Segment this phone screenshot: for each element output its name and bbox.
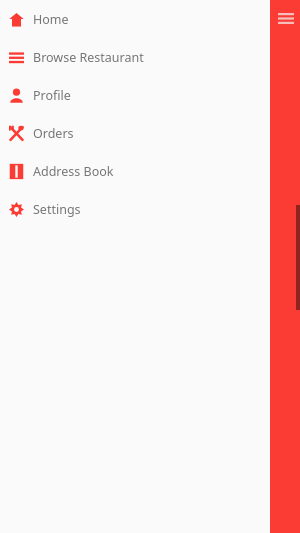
button[interactable]: Settings bbox=[0, 190, 270, 228]
button[interactable]: Profile bbox=[0, 76, 270, 114]
button[interactable]: Open navigation menu bbox=[276, 8, 296, 28]
staticText: Profile bbox=[33, 87, 71, 104]
staticText: Address Book bbox=[33, 163, 114, 180]
staticText: Orders bbox=[33, 125, 74, 142]
staticText: Settings bbox=[33, 201, 81, 218]
staticText: Home bbox=[33, 11, 69, 28]
button[interactable]: Home bbox=[0, 0, 270, 38]
button[interactable]: Address Book bbox=[0, 152, 270, 190]
staticText: Browse Restaurant bbox=[33, 49, 144, 66]
button[interactable]: Browse Restaurant bbox=[0, 38, 270, 76]
button[interactable]: Orders bbox=[0, 114, 270, 152]
